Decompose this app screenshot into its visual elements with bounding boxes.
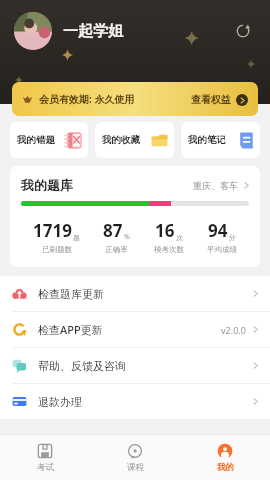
staticText: 已刷题数: [42, 245, 72, 254]
staticText: %: [124, 232, 130, 242]
staticText: 87: [103, 219, 123, 242]
staticText: 帮助、反馈及咨询: [38, 359, 126, 373]
button[interactable]: Profile photo: [14, 12, 52, 50]
button[interactable]: 我的收藏: [95, 122, 174, 158]
staticText: 重庆、客车: [193, 180, 238, 191]
staticText: 我的收藏: [102, 134, 140, 146]
button[interactable]: 我的题库: [10, 166, 260, 201]
staticText: 查看权益: [191, 93, 231, 106]
staticText: 我的笔记: [188, 134, 226, 146]
staticText: 我的题库: [21, 177, 73, 193]
staticText: 16: [155, 219, 175, 242]
staticText: 题: [73, 233, 80, 242]
button[interactable]: 我的错题: [10, 122, 88, 158]
staticText: 课程: [127, 462, 144, 473]
button[interactable]: 我的笔记: [181, 122, 260, 158]
staticText: 会员有效期: 永久使用: [39, 92, 135, 106]
staticText: 退款办理: [38, 395, 82, 409]
button[interactable]: 会员有效期: 永久使用: [12, 82, 258, 116]
staticText: 我的错题: [17, 134, 55, 146]
button[interactable]: 检查题库更新: [0, 276, 270, 311]
button[interactable]: 帮助、反馈及咨询: [0, 348, 270, 383]
staticText: 分: [229, 233, 236, 242]
button[interactable]: 课程: [90, 435, 180, 480]
staticText: 考试: [37, 462, 54, 473]
staticText: 模考次数: [154, 245, 184, 254]
button[interactable]: 我的: [180, 435, 270, 480]
staticText: 1719: [33, 219, 72, 242]
staticText: 一起学姐: [63, 22, 123, 41]
staticText: 平均成绩: [207, 245, 237, 254]
staticText: 94: [208, 219, 228, 242]
staticText: 次: [176, 233, 183, 242]
staticText: 检查APP更新: [38, 322, 103, 337]
staticText: 正确率: [105, 245, 128, 254]
button[interactable]: 考试: [0, 435, 90, 480]
button[interactable]: 退款办理: [0, 384, 270, 419]
staticText: v2.0.0: [221, 324, 246, 336]
staticText: 检查题库更新: [38, 287, 104, 301]
staticText: 我的: [217, 462, 234, 473]
button[interactable]: Refresh: [230, 18, 256, 44]
button[interactable]: 检查APP更新: [0, 312, 270, 347]
